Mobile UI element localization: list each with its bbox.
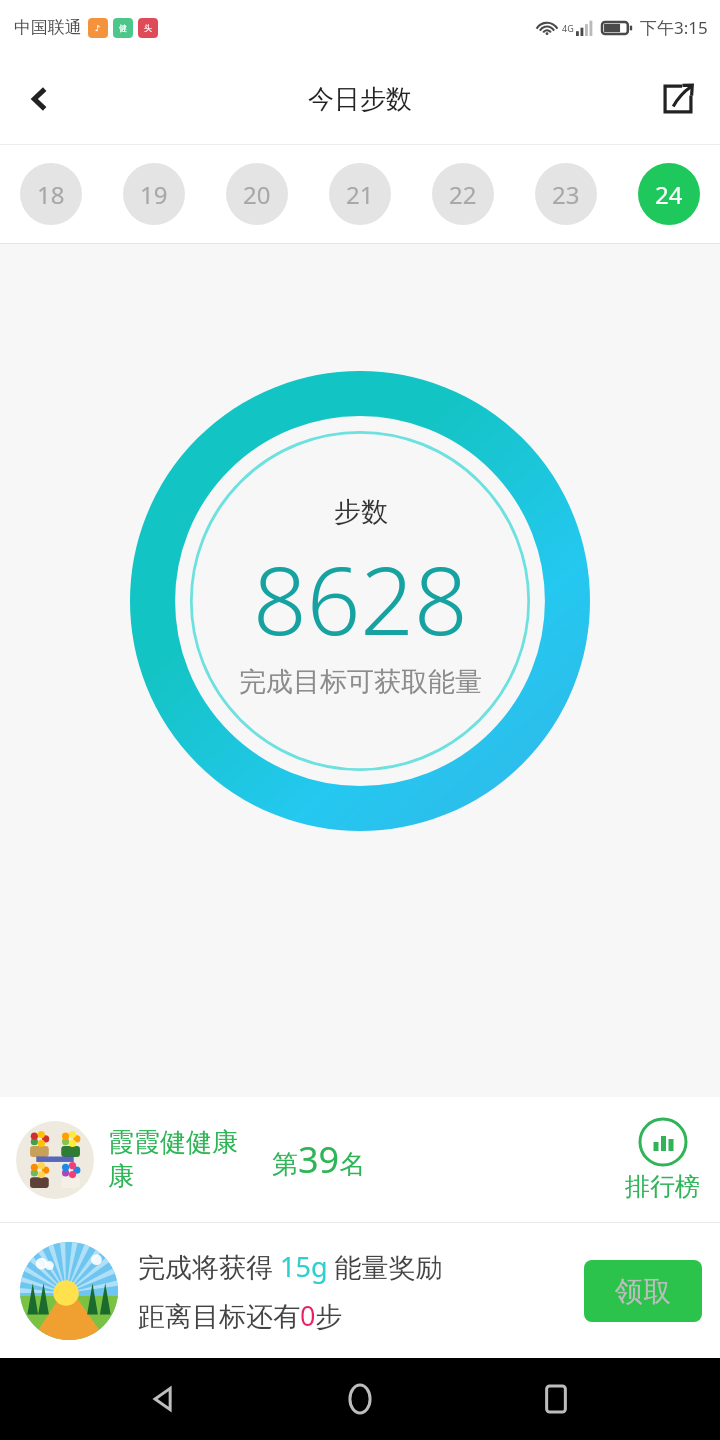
button[interactable]: 20 (226, 163, 288, 225)
staticText: 步数 (334, 495, 388, 529)
staticText: 霞霞健健康康 (108, 1126, 258, 1193)
button[interactable]: Home (328, 1367, 392, 1431)
staticText: 中国联通 (14, 17, 82, 38)
button[interactable]: 18 (20, 163, 82, 225)
button[interactable]: 领取 (584, 1260, 702, 1322)
staticText: 下午3:15 (640, 16, 708, 39)
staticText: 完成目标可获取能量 (239, 665, 482, 699)
button[interactable]: 23 (535, 163, 597, 225)
staticText: 排行榜 (625, 1171, 700, 1202)
staticText: ♪ (95, 24, 101, 33)
staticText: 第39名 (272, 1135, 366, 1184)
staticText: 20 (243, 178, 271, 211)
staticText: 完成将获得 15g 能量奖励 (138, 1248, 443, 1285)
button[interactable]: 24 (638, 163, 700, 225)
button[interactable]: 22 (432, 163, 494, 225)
staticText: 今日步数 (308, 83, 412, 116)
staticText: 24 (655, 178, 683, 211)
staticText: 18 (37, 178, 65, 211)
button[interactable]: Share (648, 69, 708, 129)
staticText: 距离目标还有0步 (138, 1297, 343, 1334)
staticText: 领取 (615, 1274, 671, 1309)
button[interactable]: Back (132, 1367, 196, 1431)
button[interactable]: 排行榜 (621, 1113, 704, 1206)
staticText: 4G (562, 22, 574, 34)
staticText: 23 (552, 178, 580, 211)
button[interactable]: 霞霞健健康康 (0, 1097, 720, 1222)
button[interactable]: 19 (123, 163, 185, 225)
staticText: 健 (119, 23, 127, 33)
staticText: 19 (140, 178, 168, 211)
button[interactable]: Recents (524, 1367, 588, 1431)
staticText: 头 (144, 23, 152, 33)
button[interactable]: Back (10, 69, 70, 129)
staticText: 8628 (253, 535, 468, 663)
staticText: 21 (346, 178, 374, 211)
button[interactable]: 21 (329, 163, 391, 225)
staticText: 22 (449, 178, 477, 211)
